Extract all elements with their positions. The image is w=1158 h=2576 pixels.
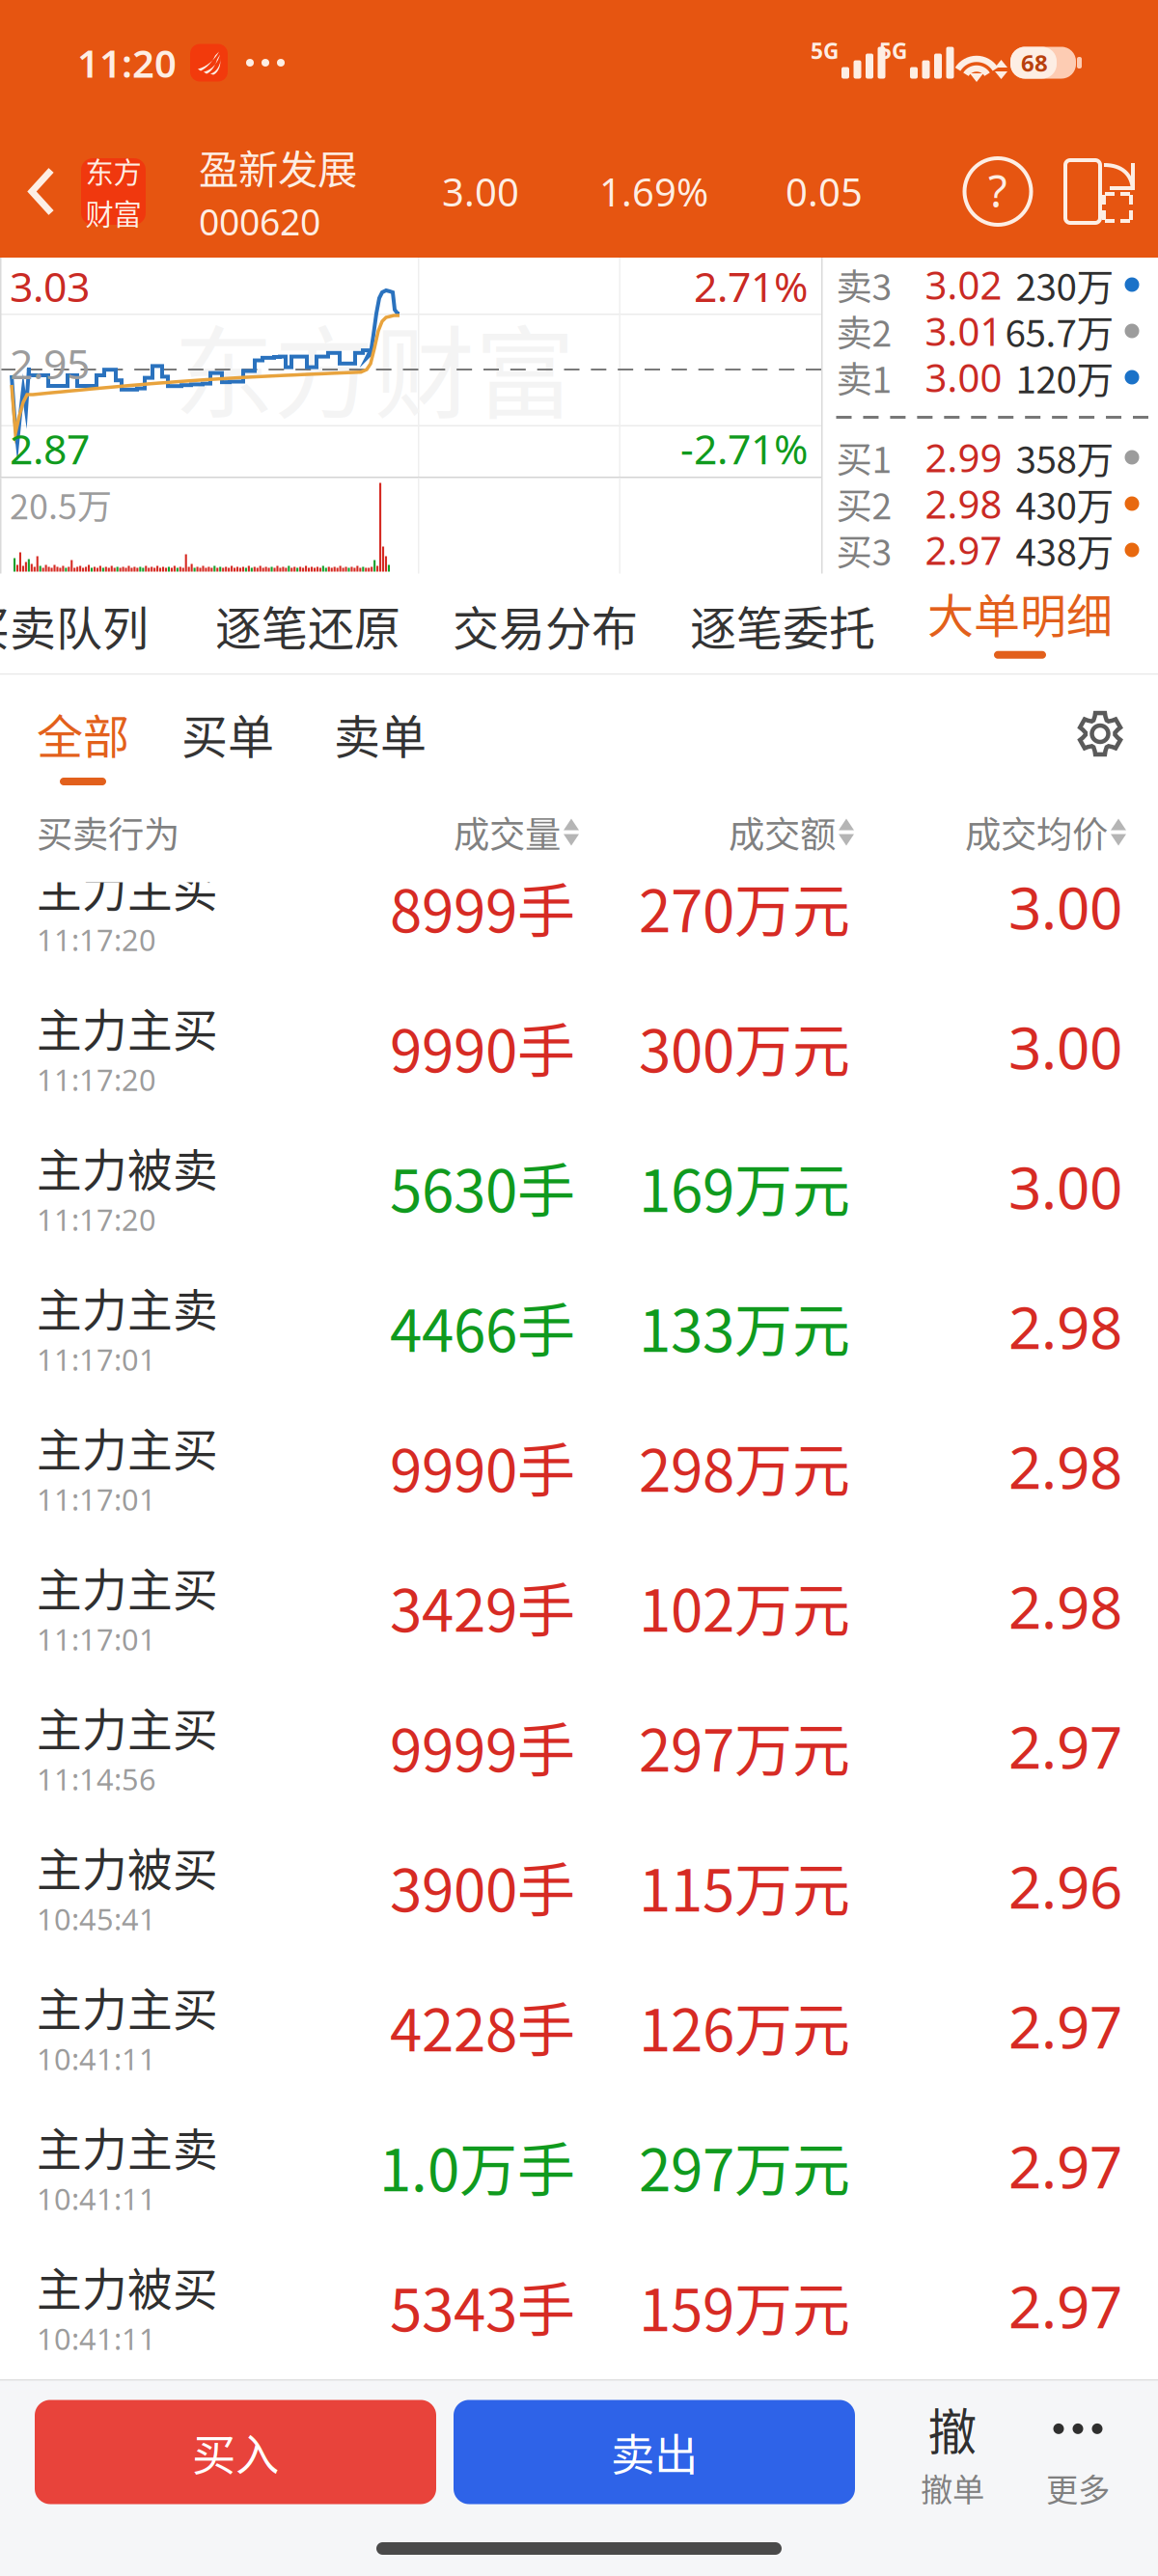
staticText: 11:17:20 xyxy=(37,1060,156,1099)
button[interactable]: 卖单 xyxy=(322,700,438,775)
staticText: 全部 xyxy=(37,700,129,767)
staticText: 逐笔委托 xyxy=(690,592,875,659)
staticText: 主力主买 xyxy=(37,1414,218,1480)
button[interactable]: 主力主卖 xyxy=(0,2096,1158,2236)
button[interactable]: 逐笔委托 xyxy=(686,577,879,673)
staticText: 11:14:56 xyxy=(37,1759,156,1798)
button[interactable]: 主力主卖 xyxy=(0,1257,1158,1397)
staticText: 主力主买 xyxy=(37,995,218,1060)
staticText: 2.97 xyxy=(1008,2267,1122,2344)
staticText: 9999手 xyxy=(390,1704,575,1788)
staticText: 3.03 xyxy=(10,259,90,313)
staticText: 5G xyxy=(879,36,907,65)
button[interactable]: Settings xyxy=(1077,711,1123,757)
staticText: 2.99 xyxy=(925,432,1002,483)
button[interactable]: 主力主买 xyxy=(0,977,1158,1117)
button[interactable]: 大单明细 xyxy=(924,577,1117,673)
staticText: 撤 xyxy=(928,2393,977,2464)
staticText: 2.97 xyxy=(1008,2128,1122,2204)
button[interactable]: 买入 xyxy=(35,2400,436,2504)
staticText: 20.5万 xyxy=(10,479,112,529)
staticText: 卖出 xyxy=(611,2420,698,2484)
button[interactable]: 更多 xyxy=(1015,2393,1141,2511)
staticText: 000620 xyxy=(199,197,320,245)
staticText: 126万元 xyxy=(639,1984,850,2068)
staticText: 11:17:20 xyxy=(37,920,156,959)
staticText: 297万元 xyxy=(639,1704,850,1788)
staticText: 102万元 xyxy=(639,1565,850,1648)
staticText: 卖1 xyxy=(836,351,892,403)
button[interactable]: 主力主买 xyxy=(0,1397,1158,1536)
staticText: 3.00 xyxy=(442,166,519,217)
staticText: 东方 xyxy=(85,150,141,191)
button[interactable]: 买卖队列 xyxy=(0,577,152,673)
staticText: 4228手 xyxy=(390,1984,575,2068)
staticText: 东方财富 xyxy=(174,294,575,440)
staticText: 10:41:11 xyxy=(37,2179,156,2218)
staticText: 撤单 xyxy=(921,2464,984,2511)
button[interactable]: 交易分布 xyxy=(449,577,642,673)
staticText: 298万元 xyxy=(639,1425,850,1508)
staticText: 3429手 xyxy=(390,1565,575,1648)
staticText: 120万 xyxy=(1016,350,1114,404)
button[interactable]: 卖出 xyxy=(436,2400,855,2504)
button[interactable]: 逐笔还原 xyxy=(211,577,404,673)
staticText: 11:17:01 xyxy=(37,1619,156,1659)
staticText: ? xyxy=(988,162,1007,220)
staticText: 8999手 xyxy=(390,865,575,949)
button[interactable]: 全部 xyxy=(25,700,141,816)
staticText: 主力主买 xyxy=(37,1554,218,1619)
staticText: 3.01 xyxy=(925,305,1002,356)
staticText: 2.97 xyxy=(1008,1988,1122,2065)
button[interactable]: 主力被卖 xyxy=(0,1117,1158,1257)
staticText: 成交量 xyxy=(454,806,561,858)
button[interactable]: 主力主买 xyxy=(0,1676,1158,1816)
staticText: 主力被卖 xyxy=(37,1135,218,1200)
staticText: 2.71% xyxy=(694,259,808,313)
staticText: 5G xyxy=(811,36,839,65)
staticText: 9990手 xyxy=(390,1425,575,1508)
staticText: 3.02 xyxy=(925,259,1002,310)
button[interactable]: Help xyxy=(959,153,1036,230)
staticText: 297万元 xyxy=(639,2124,850,2208)
staticText: 2.96 xyxy=(1008,1848,1122,1925)
staticText: 2.98 xyxy=(1008,1288,1122,1365)
button[interactable]: Back xyxy=(13,153,70,230)
staticText: 卖单 xyxy=(334,700,427,767)
button[interactable]: 主力主买 xyxy=(0,837,1158,977)
staticText: 主力主买 xyxy=(37,1694,218,1759)
staticText: 230万 xyxy=(1016,258,1114,312)
staticText: 10:41:11 xyxy=(37,2319,156,2358)
staticText: 成交均价 xyxy=(965,806,1108,858)
staticText: 主力被买 xyxy=(37,1834,218,1899)
staticText: 3.00 xyxy=(925,352,1002,403)
button[interactable]: 撤 xyxy=(890,2393,1015,2511)
staticText: 5630手 xyxy=(390,1145,575,1229)
staticText: 2.97 xyxy=(1008,1708,1122,1785)
button[interactable]: 主力被买 xyxy=(0,1816,1158,1956)
staticText: 4466手 xyxy=(390,1285,575,1369)
staticText: 主力主卖 xyxy=(37,2114,218,2179)
button[interactable]: Multi window xyxy=(1044,153,1121,230)
staticText: 卖3 xyxy=(836,259,892,311)
staticText: 169万元 xyxy=(639,1145,850,1229)
staticText: 成交额 xyxy=(729,806,836,858)
staticText: 2.97 xyxy=(925,524,1002,575)
button[interactable]: 主力主买 xyxy=(0,1536,1158,1676)
staticText: 5343手 xyxy=(390,2264,575,2348)
staticText: 更多 xyxy=(1046,2464,1110,2511)
staticText: 11:17:01 xyxy=(37,1340,156,1379)
staticText: 买单 xyxy=(181,700,274,767)
staticText: 11:17:20 xyxy=(37,1200,156,1239)
button[interactable]: 主力被买 xyxy=(0,2236,1158,2376)
staticText: 主力主买 xyxy=(37,1974,218,2039)
staticText: 159万元 xyxy=(639,2264,850,2348)
staticText: 2.98 xyxy=(1008,1428,1122,1505)
staticText: 438万 xyxy=(1016,523,1114,577)
button[interactable]: 主力主买 xyxy=(0,1956,1158,2096)
staticText: 逐笔还原 xyxy=(215,592,400,659)
button[interactable]: 买单 xyxy=(170,700,286,775)
staticText: 主力主买 xyxy=(37,855,218,920)
staticText: 买入 xyxy=(192,2420,279,2484)
staticText: 交易分布 xyxy=(453,592,638,659)
